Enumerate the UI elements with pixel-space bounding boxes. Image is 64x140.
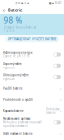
staticText: OPTIMALIZOVAT VYUŽITÍ BATERIE (8, 37, 56, 41)
staticText: Režim úspory energie (3, 51, 33, 54)
staticText: Vypnuto (3, 77, 15, 81)
staticText: Kapacita baterie (3, 109, 24, 113)
staticText: Nebudou pracovat na pozadí a posílat ozn… (3, 120, 42, 128)
staticText: Neaktivované aplikace (3, 117, 31, 120)
button[interactable]: Ultra úsporný režim (0, 71, 64, 83)
staticText: › (60, 131, 61, 136)
staticText: Zbývající čas používání asi (3, 26, 36, 29)
staticText: Zapne se při 15 % (3, 54, 29, 58)
staticText: Další nastavení baterie (3, 132, 33, 135)
button[interactable]: Režim úspory energie (0, 49, 64, 60)
staticText: › (60, 108, 61, 114)
staticText: Podrobnosti o využití (3, 98, 33, 101)
staticText: ◔ ✉ ◉ ✦ ◈ (15, 1, 29, 4)
staticText: Ultra úsporný režim (3, 74, 28, 77)
staticText: › (60, 97, 61, 102)
staticText: Baterie (8, 7, 22, 13)
button[interactable]: Neaktivované aplikace (0, 117, 64, 128)
staticText: Využití baterie (3, 87, 23, 90)
staticText: Vypnuto (3, 66, 15, 69)
staticText: 98 % (3, 15, 22, 26)
staticText: ▮▮ ▰ 9:41 (49, 1, 62, 5)
staticText: ‹ (3, 6, 5, 14)
staticText: 1 d 5 h (3, 29, 14, 33)
button[interactable]: Podrobnosti o využití (0, 94, 64, 105)
button[interactable]: Back (1, 6, 7, 14)
staticText: Úsporný režim (3, 62, 21, 66)
button[interactable]: OPTIMALIZOVAT VYUŽITÍ BATERIE (5, 36, 59, 42)
staticText: Dobrý stav baterie (46, 107, 59, 115)
button[interactable]: Úsporný režim (0, 60, 64, 71)
button[interactable]: Využití baterie (0, 83, 64, 94)
button[interactable]: Další nastavení baterie (0, 128, 64, 139)
button[interactable]: Kapacita baterie (0, 105, 64, 117)
staticText: › (60, 86, 61, 91)
